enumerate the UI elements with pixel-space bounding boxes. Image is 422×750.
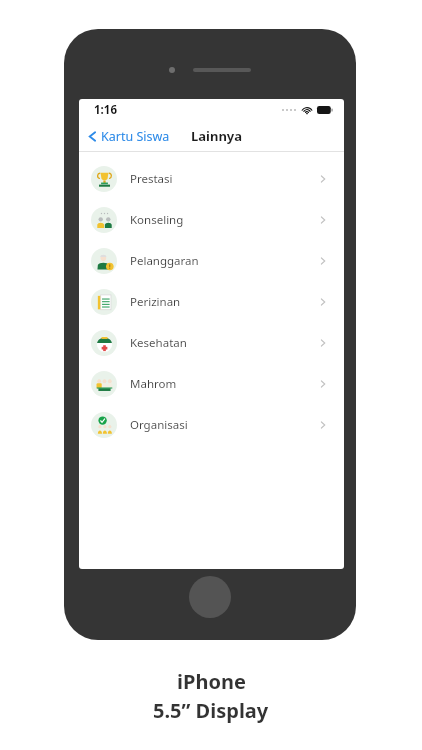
button[interactable]: Kartu Siswa <box>79 123 178 150</box>
other: Mahrom <box>319 380 327 388</box>
button[interactable]: Konseling <box>79 199 344 240</box>
button[interactable]: Prestasi <box>79 158 344 199</box>
staticText: 5.5” Display <box>153 697 269 724</box>
button[interactable]: Organisasi <box>79 404 344 445</box>
staticText: Organisasi <box>130 417 188 433</box>
staticText: Lainnya <box>191 127 243 145</box>
other: Perizinan <box>319 298 327 306</box>
other: Kesehatan <box>319 339 327 347</box>
other: Konseling <box>319 216 327 224</box>
staticText: 1:16 <box>94 102 117 118</box>
other: Prestasi <box>319 175 327 183</box>
staticText: Pelanggaran <box>130 253 199 269</box>
staticText: iPhone <box>177 668 246 695</box>
staticText: Kesehatan <box>130 335 187 351</box>
button[interactable]: Perizinan <box>79 281 344 322</box>
button[interactable]: Kesehatan <box>79 322 344 363</box>
staticText: Konseling <box>130 212 184 228</box>
button[interactable]: Pelanggaran <box>79 240 344 281</box>
other: Pelanggaran <box>319 257 327 265</box>
staticText: Mahrom <box>130 376 177 392</box>
staticText: Perizinan <box>130 294 181 310</box>
staticText: Kartu Siswa <box>101 128 170 145</box>
button[interactable]: Mahrom <box>79 363 344 404</box>
other: Organisasi <box>319 421 327 429</box>
staticText: Prestasi <box>130 171 173 187</box>
